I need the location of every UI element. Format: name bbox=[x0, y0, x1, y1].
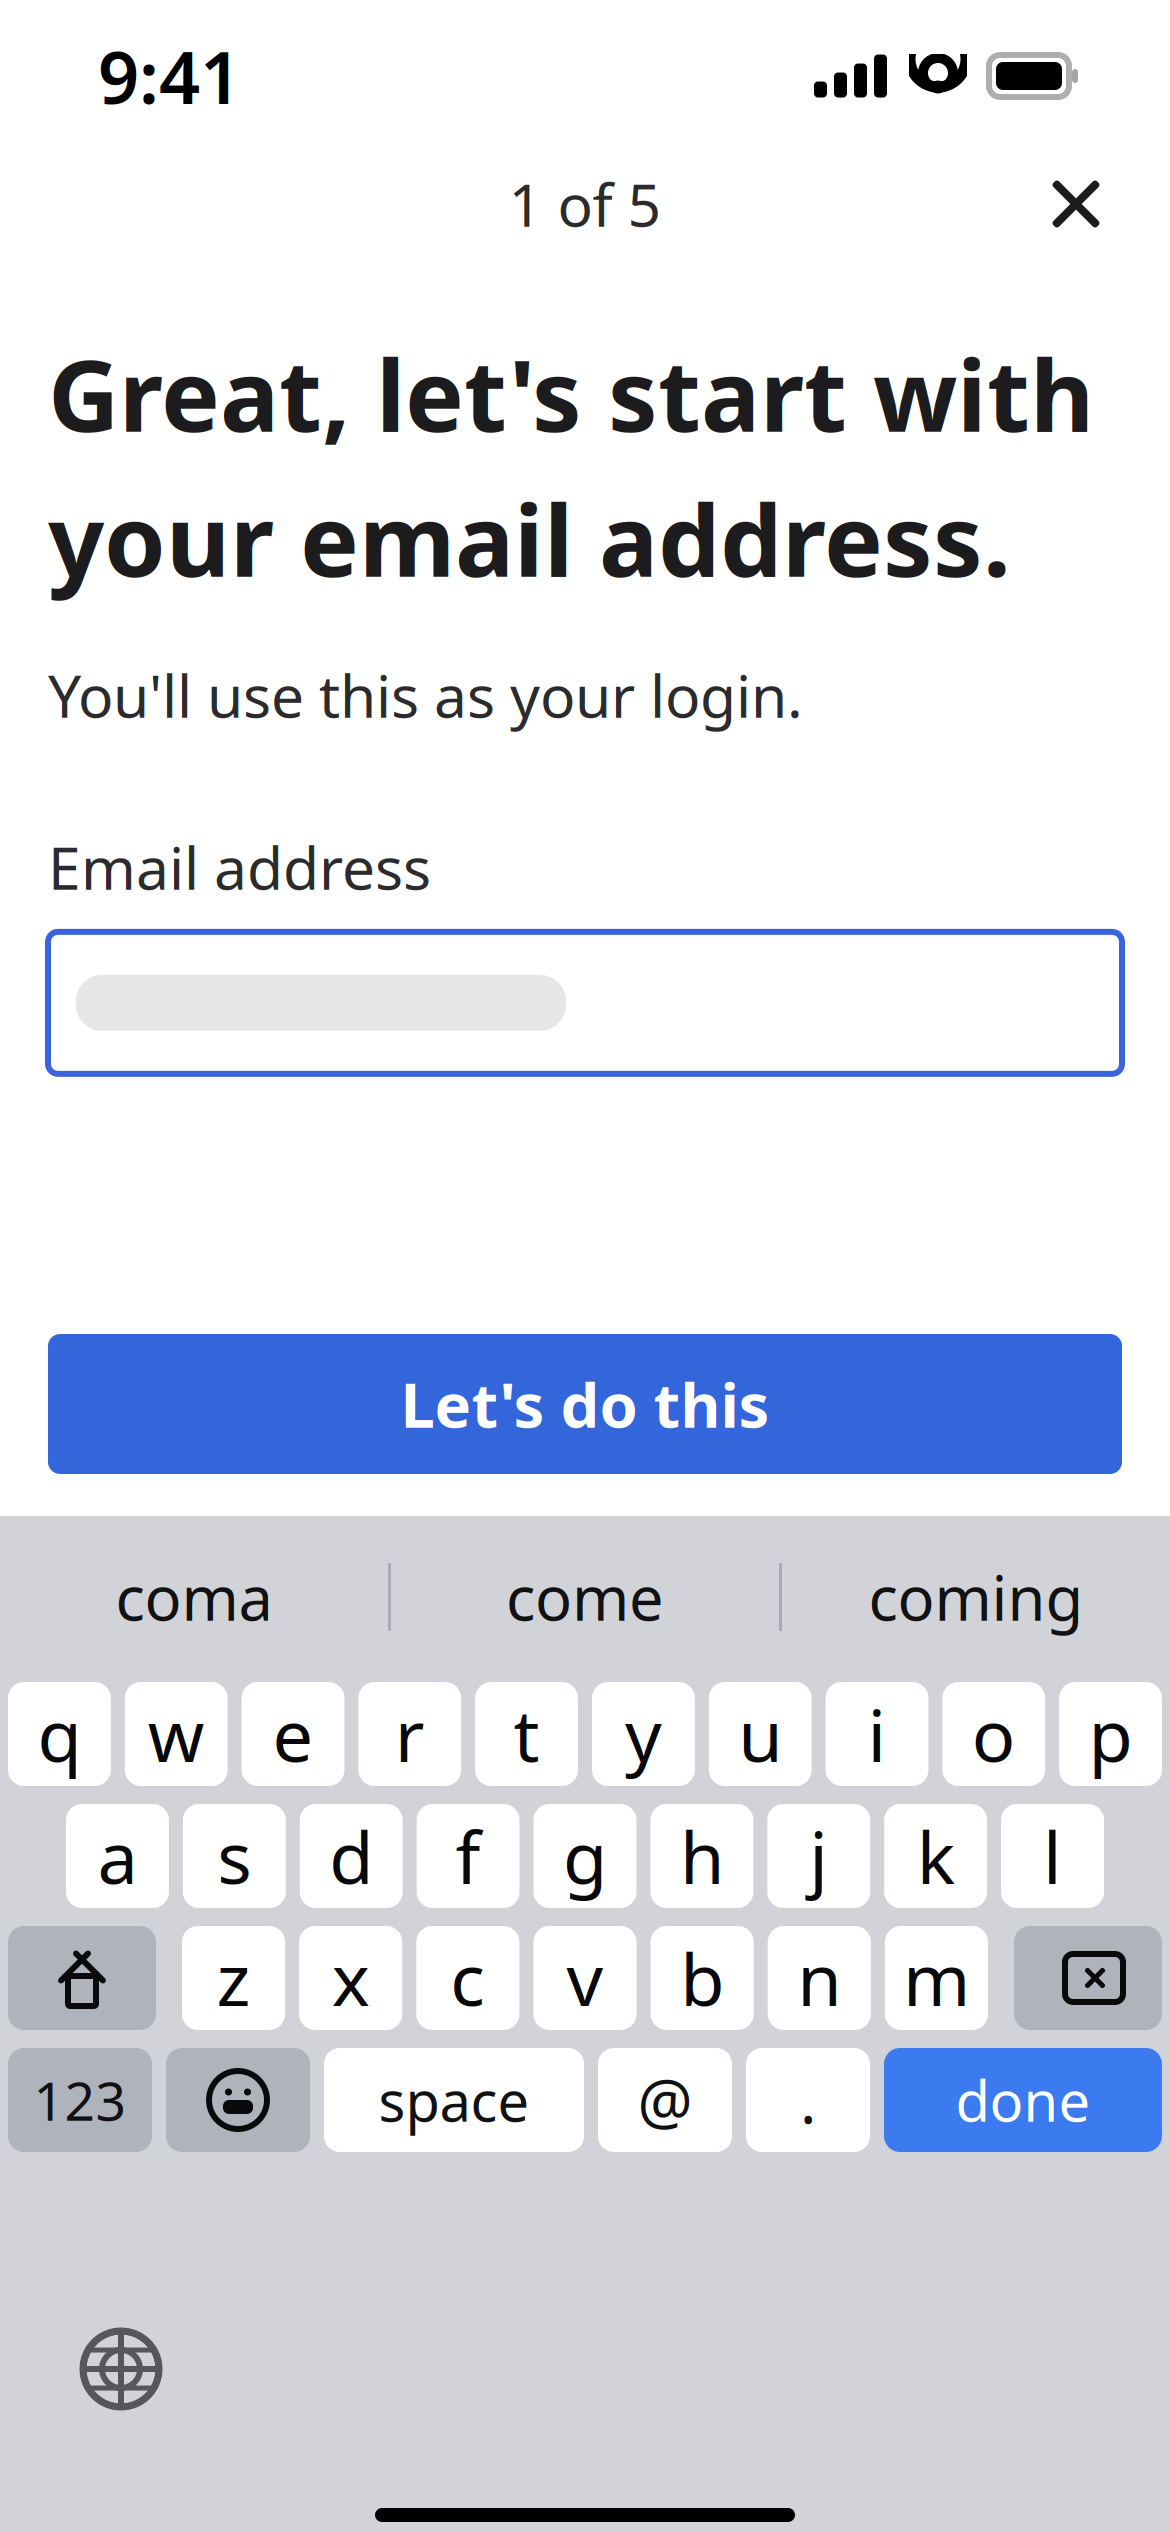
button[interactable]: y bbox=[592, 1682, 695, 1786]
button[interactable]: p bbox=[1059, 1682, 1162, 1786]
button[interactable]: Close bbox=[1016, 144, 1136, 264]
staticText: u bbox=[738, 1686, 782, 1782]
staticText: done bbox=[955, 2063, 1090, 2137]
staticText: w bbox=[148, 1686, 205, 1782]
staticText: l bbox=[1043, 1808, 1062, 1904]
staticText: h bbox=[680, 1808, 724, 1904]
button[interactable]: coma bbox=[0, 1516, 388, 1678]
button[interactable]: Email address text field bbox=[48, 932, 1122, 1074]
button[interactable]: a bbox=[66, 1804, 169, 1908]
staticText: m bbox=[903, 1930, 970, 2026]
staticText: j bbox=[809, 1808, 828, 1904]
staticText: come bbox=[506, 1556, 664, 1638]
button[interactable]: u bbox=[709, 1682, 812, 1786]
button[interactable]: space bbox=[324, 2048, 584, 2152]
button[interactable]: h bbox=[650, 1804, 753, 1908]
button[interactable]: done bbox=[884, 2048, 1162, 2152]
button[interactable]: z bbox=[182, 1926, 285, 2030]
staticText: a bbox=[97, 1808, 137, 1904]
staticText: t bbox=[514, 1686, 540, 1782]
button[interactable]: Next keyboard bbox=[66, 2314, 176, 2424]
staticText: i bbox=[867, 1686, 886, 1782]
button[interactable]: Delete bbox=[1014, 1926, 1162, 2030]
staticText: Let's do this bbox=[400, 1363, 769, 1445]
staticText: n bbox=[797, 1930, 841, 2026]
staticText: b bbox=[680, 1930, 724, 2026]
button[interactable]: n bbox=[768, 1926, 871, 2030]
button[interactable]: q bbox=[8, 1682, 111, 1786]
staticText: Great, let's start with your email addre… bbox=[48, 328, 1094, 604]
button[interactable]: Emoji bbox=[166, 2048, 310, 2152]
staticText: q bbox=[37, 1686, 81, 1782]
staticText: c bbox=[450, 1930, 485, 2026]
button[interactable]: s bbox=[183, 1804, 286, 1908]
staticText: d bbox=[329, 1808, 373, 1904]
button[interactable]: m bbox=[885, 1926, 988, 2030]
button[interactable]: k bbox=[884, 1804, 987, 1908]
button[interactable]: c bbox=[416, 1926, 519, 2030]
staticText: k bbox=[917, 1808, 955, 1904]
button[interactable]: j bbox=[767, 1804, 870, 1908]
button[interactable]: e bbox=[242, 1682, 344, 1786]
staticText: 123 bbox=[33, 2065, 126, 2135]
button[interactable]: o bbox=[942, 1682, 1045, 1786]
staticText: coma bbox=[115, 1556, 272, 1638]
staticText: space bbox=[378, 2063, 529, 2137]
button[interactable]: l bbox=[1001, 1804, 1104, 1908]
button[interactable]: f bbox=[417, 1804, 520, 1908]
staticText: s bbox=[217, 1808, 251, 1904]
button[interactable]: b bbox=[651, 1926, 754, 2030]
button[interactable]: 123 bbox=[8, 2048, 152, 2152]
button[interactable]: g bbox=[534, 1804, 636, 1908]
staticText: coming bbox=[868, 1556, 1083, 1638]
button[interactable]: w bbox=[125, 1682, 228, 1786]
staticText: You'll use this as your login. bbox=[48, 656, 803, 734]
button[interactable]: d bbox=[300, 1804, 403, 1908]
staticText: p bbox=[1089, 1686, 1133, 1782]
button[interactable]: i bbox=[826, 1682, 928, 1786]
staticText: y bbox=[625, 1686, 662, 1782]
staticText: Email address bbox=[48, 828, 431, 906]
button[interactable]: Shift bbox=[8, 1926, 156, 2030]
staticText: o bbox=[972, 1686, 1016, 1782]
staticText: . bbox=[800, 2059, 816, 2141]
button[interactable]: coming bbox=[782, 1516, 1170, 1678]
staticText: e bbox=[272, 1686, 313, 1782]
staticText: @ bbox=[637, 2059, 692, 2141]
button[interactable]: . bbox=[746, 2048, 870, 2152]
button[interactable]: t bbox=[475, 1682, 578, 1786]
button[interactable]: v bbox=[533, 1926, 636, 2030]
staticText: r bbox=[395, 1686, 425, 1782]
staticText: g bbox=[563, 1808, 607, 1904]
button[interactable]: @ bbox=[598, 2048, 732, 2152]
staticText: z bbox=[217, 1930, 251, 2026]
button[interactable]: Let's do this bbox=[48, 1334, 1122, 1474]
button[interactable]: r bbox=[358, 1682, 461, 1786]
staticText: x bbox=[332, 1930, 370, 2026]
staticText: 1 of 5 bbox=[508, 165, 661, 243]
staticText: f bbox=[456, 1808, 481, 1904]
staticText: v bbox=[566, 1930, 603, 2026]
button[interactable]: x bbox=[299, 1926, 402, 2030]
button[interactable]: come bbox=[391, 1516, 779, 1678]
staticText: 9:41 bbox=[98, 28, 241, 124]
